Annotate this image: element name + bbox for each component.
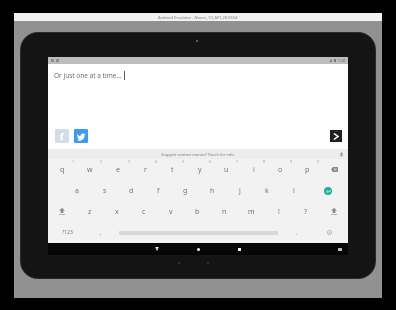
staticText: z xyxy=(88,207,92,217)
staticText: n xyxy=(222,207,227,217)
button[interactable]: Share on Twitter xyxy=(74,129,88,143)
staticText: c xyxy=(142,207,146,217)
staticText: r xyxy=(144,165,147,175)
staticText: 6 xyxy=(209,159,212,164)
button[interactable]: c xyxy=(130,201,157,222)
staticText: 3 xyxy=(128,159,131,164)
button[interactable]: z xyxy=(76,201,103,222)
button[interactable]: ?123 xyxy=(48,222,87,243)
staticText: o xyxy=(278,165,283,175)
button[interactable]: d xyxy=(118,180,145,201)
button[interactable]: b xyxy=(184,201,211,222)
staticText: b xyxy=(195,207,200,217)
staticText: w xyxy=(87,165,93,175)
button[interactable]: Keyboard settings xyxy=(310,222,348,243)
staticText: a xyxy=(75,186,79,196)
staticText: ? xyxy=(304,207,308,217)
button[interactable]: Enter xyxy=(307,180,348,201)
button[interactable]: Suggest contact names? Touch for info. xyxy=(48,149,348,159)
button[interactable]: p xyxy=(294,159,321,180)
staticText: s xyxy=(103,186,107,196)
button[interactable]: m xyxy=(238,201,265,222)
button[interactable]: Back xyxy=(153,245,161,253)
button[interactable]: Hide keyboard xyxy=(337,246,343,252)
button[interactable]: e xyxy=(104,159,132,180)
staticText: e xyxy=(116,165,120,175)
staticText: 8 xyxy=(263,159,266,164)
button[interactable]: x xyxy=(103,201,130,222)
button[interactable]: f xyxy=(145,180,172,201)
button[interactable]: y xyxy=(186,159,213,180)
button[interactable]: Send xyxy=(330,130,342,142)
staticText: f xyxy=(60,131,64,142)
staticText: l xyxy=(293,186,295,196)
button[interactable]: r xyxy=(132,159,159,180)
staticText: . xyxy=(296,229,298,237)
button[interactable]: j xyxy=(226,180,253,201)
staticText: 1:48 xyxy=(338,58,345,63)
staticText: t xyxy=(171,165,174,175)
staticText: 2 xyxy=(100,159,103,164)
button[interactable]: i xyxy=(240,159,267,180)
staticText: Android Emulator - Nexus_10_API_29:5554 xyxy=(158,15,238,20)
button[interactable]: Share on Facebook xyxy=(55,129,69,143)
button[interactable]: Voice input xyxy=(338,151,344,157)
button[interactable]: k xyxy=(253,180,280,201)
staticText: y xyxy=(198,165,202,175)
staticText: , xyxy=(100,229,102,237)
staticText: Or just one at a time... xyxy=(54,71,122,80)
button[interactable]: a xyxy=(63,180,91,201)
button[interactable]: ? xyxy=(292,201,319,222)
staticText: j xyxy=(239,186,241,196)
button[interactable]: Shift xyxy=(48,201,76,222)
staticText: 4 xyxy=(155,159,158,164)
button[interactable]: w xyxy=(76,159,104,180)
button[interactable]: q xyxy=(48,159,76,180)
staticText: 0 xyxy=(317,159,320,164)
button[interactable]: o xyxy=(267,159,294,180)
staticText: u xyxy=(224,165,229,175)
button[interactable]: s xyxy=(91,180,118,201)
button[interactable]: Backspace xyxy=(321,159,348,180)
staticText: h xyxy=(210,186,215,196)
staticText: ?123 xyxy=(62,229,73,236)
staticText: g xyxy=(183,186,188,196)
staticText: Suggest contact names? Touch for info. xyxy=(161,152,235,157)
staticText: 1 xyxy=(72,159,75,164)
button[interactable]: u xyxy=(213,159,240,180)
staticText: 5 xyxy=(182,159,185,164)
staticText: 9 xyxy=(290,159,293,164)
staticText: m xyxy=(248,207,255,217)
button[interactable]: v xyxy=(157,201,184,222)
button[interactable]: g xyxy=(172,180,199,201)
staticText: f xyxy=(157,186,160,196)
button[interactable]: Home xyxy=(194,245,202,253)
staticText: ! xyxy=(278,207,280,217)
staticText: q xyxy=(60,165,65,175)
staticText: x xyxy=(115,207,119,217)
staticText: v xyxy=(169,207,173,217)
staticText: p xyxy=(305,165,310,175)
button[interactable]: h xyxy=(199,180,226,201)
button[interactable]: Recent apps xyxy=(235,245,243,253)
button[interactable]: Shift xyxy=(319,201,348,222)
button[interactable]: t xyxy=(159,159,186,180)
button[interactable]: l xyxy=(280,180,307,201)
button[interactable] xyxy=(114,222,283,243)
staticText: 7 xyxy=(236,159,239,164)
button[interactable]: n xyxy=(211,201,238,222)
staticText: d xyxy=(129,186,134,196)
staticText: i xyxy=(253,165,255,175)
staticText: k xyxy=(265,186,269,196)
button[interactable]: ! xyxy=(265,201,292,222)
